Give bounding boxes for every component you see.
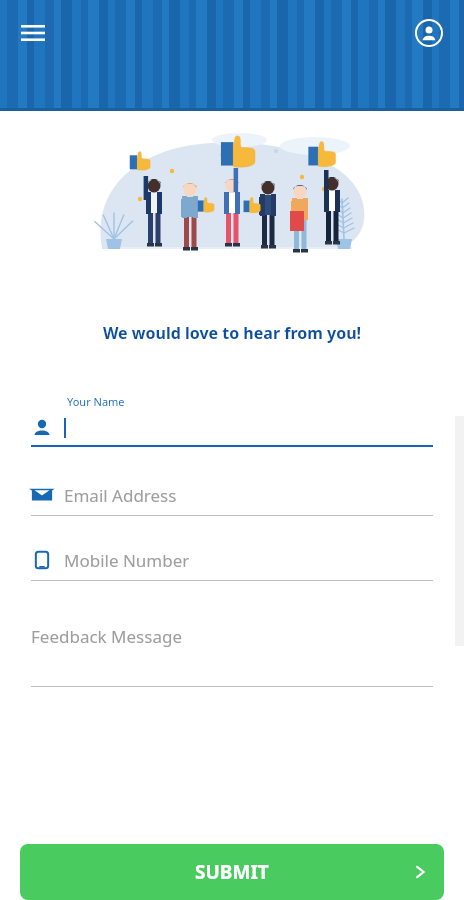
button[interactable]: Profile — [408, 12, 450, 54]
staticText: Your Name — [67, 394, 125, 409]
button[interactable]: Mobile Number — [31, 546, 433, 581]
button[interactable]: Feedback Message — [31, 625, 433, 687]
button[interactable]: Email Address — [31, 481, 433, 516]
staticText: We would love to hear from you! — [0, 322, 464, 344]
staticText: SUBMIT — [195, 859, 269, 885]
button[interactable]: SUBMIT — [20, 844, 444, 900]
button[interactable]: Your Name — [31, 394, 433, 447]
staticText: Feedback Message — [31, 625, 182, 648]
staticText: Email Address — [64, 484, 177, 507]
staticText: Mobile Number — [64, 549, 190, 572]
button[interactable]: Menu — [12, 12, 54, 54]
